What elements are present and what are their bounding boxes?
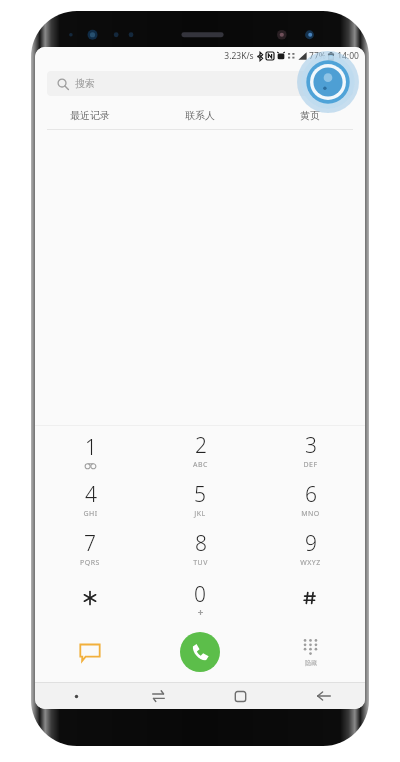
staticText: 黄页 — [300, 109, 320, 122]
staticText: PQRS — [80, 558, 100, 568]
staticText: ABC — [193, 460, 208, 470]
button[interactable]: Message — [35, 622, 145, 682]
staticText: DEF — [303, 460, 318, 470]
staticText: 8 — [195, 529, 207, 558]
staticText: 隐藏 — [305, 659, 317, 667]
button[interactable]: 6 — [255, 475, 365, 524]
staticText: 14:00 — [337, 50, 359, 62]
button[interactable]: 2 — [145, 426, 255, 475]
staticText: GHI — [83, 509, 98, 519]
staticText: 2 — [195, 431, 207, 460]
button[interactable] — [255, 573, 365, 622]
staticText: 1 — [85, 433, 97, 462]
staticText: WXYZ — [300, 558, 321, 568]
staticText: 4 — [85, 480, 97, 509]
button[interactable]: 0 — [145, 573, 255, 622]
button[interactable]: 1 — [35, 426, 145, 475]
button[interactable]: Back — [282, 683, 365, 709]
button[interactable]: 9 — [255, 524, 365, 573]
button[interactable]: 联系人 — [145, 102, 255, 129]
button[interactable]: 8 — [145, 524, 255, 573]
button[interactable]: 4 — [35, 475, 145, 524]
staticText: MNO — [301, 509, 320, 519]
staticText: 77% — [309, 50, 326, 62]
button[interactable]: Voice assistant — [297, 51, 359, 113]
button[interactable]: 3 — [255, 426, 365, 475]
button[interactable]: Call — [145, 622, 255, 682]
staticText: 5 — [194, 480, 206, 509]
staticText: 0 — [194, 580, 206, 609]
button[interactable]: Recents — [117, 683, 199, 709]
button[interactable]: Hide keypad — [255, 622, 365, 682]
staticText: 联系人 — [185, 109, 215, 122]
button[interactable]: 黄页 — [255, 102, 365, 129]
button[interactable]: 7 — [35, 524, 145, 573]
staticText: 6 — [305, 480, 317, 509]
staticText: 最近记录 — [70, 109, 110, 122]
button[interactable]: 5 — [145, 475, 255, 524]
staticText: 9 — [305, 529, 317, 558]
button[interactable]: Menu dot — [35, 683, 117, 709]
staticText: 3.23K/s — [224, 50, 254, 62]
staticText: 搜索 — [75, 77, 95, 90]
staticText: 7 — [84, 529, 96, 558]
staticText: 3 — [305, 431, 317, 460]
staticText: TUV — [193, 558, 208, 568]
button[interactable]: 搜索 — [47, 71, 353, 96]
button[interactable]: Home — [199, 683, 282, 709]
button[interactable] — [35, 573, 145, 622]
button[interactable]: 最近记录 — [35, 102, 145, 129]
staticText: JKL — [194, 509, 206, 519]
